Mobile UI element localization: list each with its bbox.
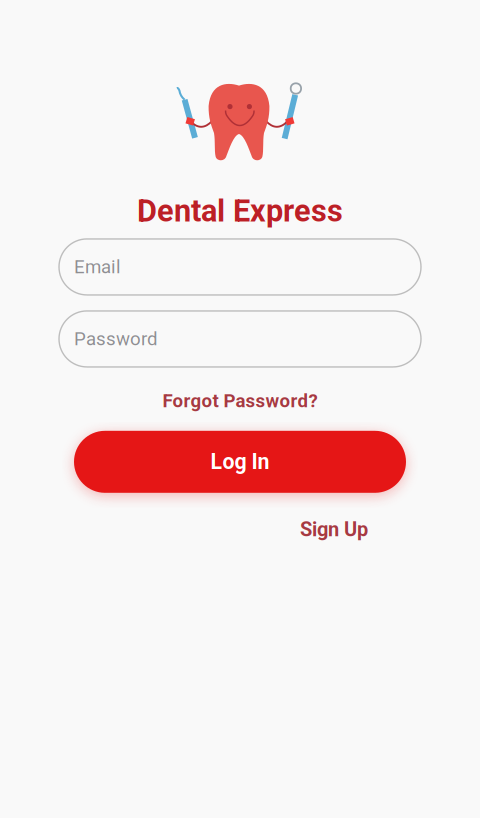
button[interactable]: Forgot Password?	[158, 386, 321, 416]
staticText: Password	[74, 328, 158, 350]
button[interactable]: Password	[59, 311, 421, 367]
button[interactable]: Email	[59, 239, 421, 295]
button[interactable]: Sign Up	[294, 512, 374, 547]
staticText: Sign Up	[300, 518, 368, 541]
button[interactable]: Log In	[74, 431, 406, 493]
staticText: Forgot Password?	[162, 390, 317, 412]
staticText: Log In	[210, 449, 269, 474]
staticText: Dental Express	[137, 193, 343, 229]
staticText: Email	[74, 256, 121, 278]
